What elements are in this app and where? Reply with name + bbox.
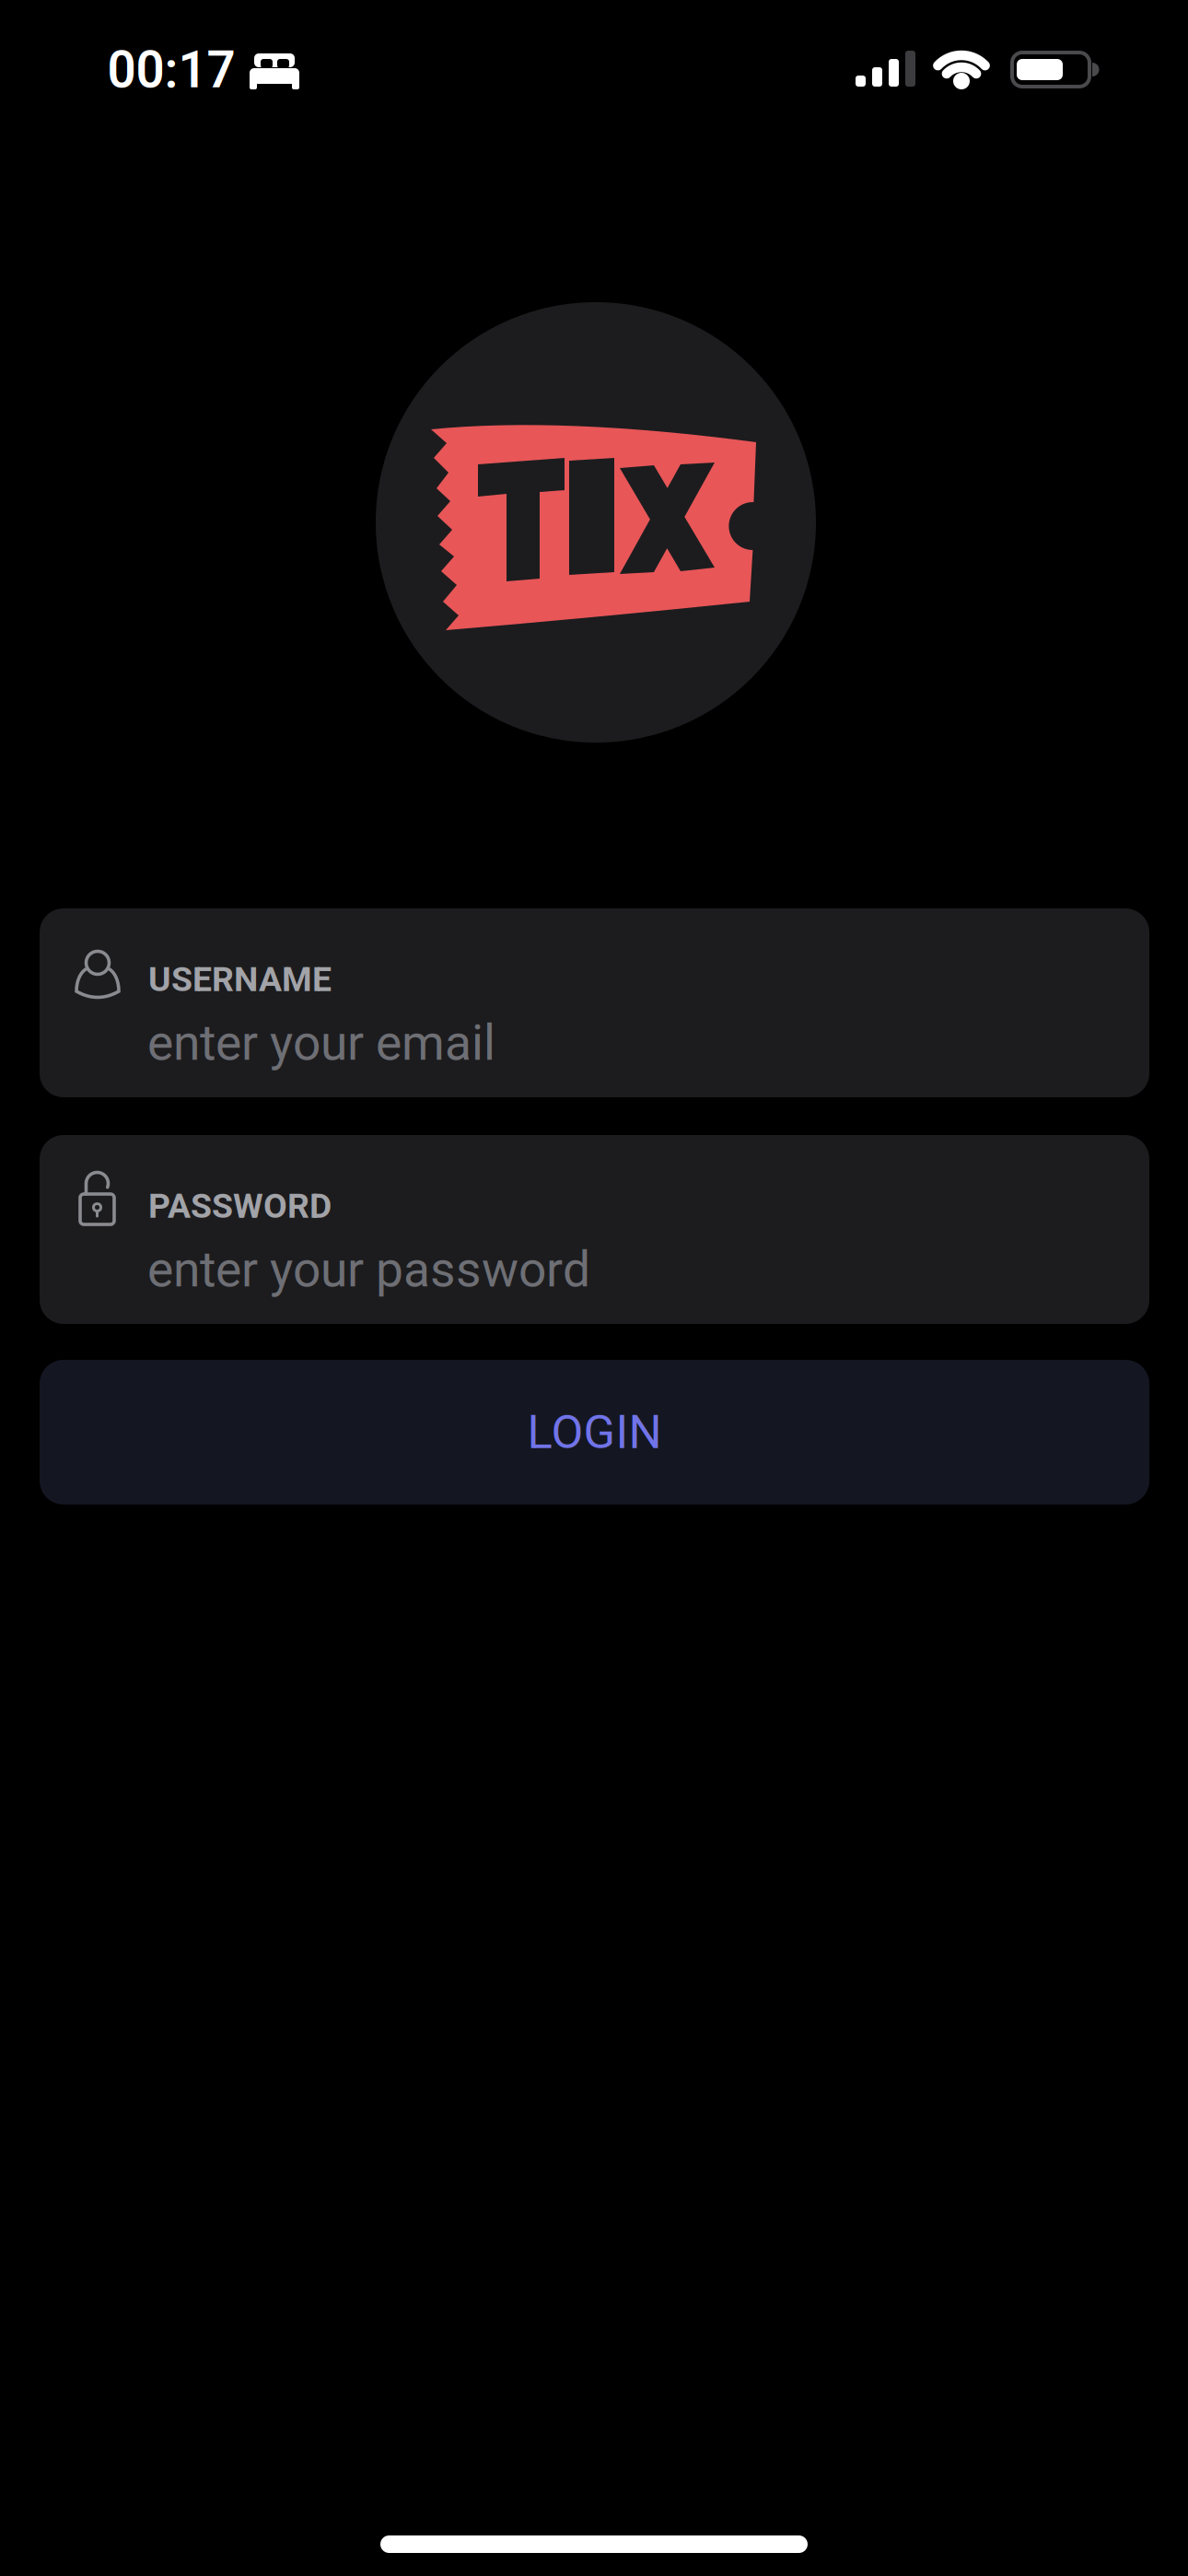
staticText: PASSWORD xyxy=(148,1186,332,1226)
staticText: enter your password xyxy=(147,1241,590,1298)
staticText: USERNAME xyxy=(148,959,332,999)
staticText: enter your email xyxy=(147,1014,495,1072)
button[interactable]: LOGIN xyxy=(40,1360,1149,1505)
staticText: 00:17 xyxy=(107,41,235,100)
staticText: LOGIN xyxy=(527,1405,662,1460)
button[interactable]: PASSWORD xyxy=(40,1135,1149,1324)
button[interactable]: USERNAME xyxy=(40,908,1149,1097)
